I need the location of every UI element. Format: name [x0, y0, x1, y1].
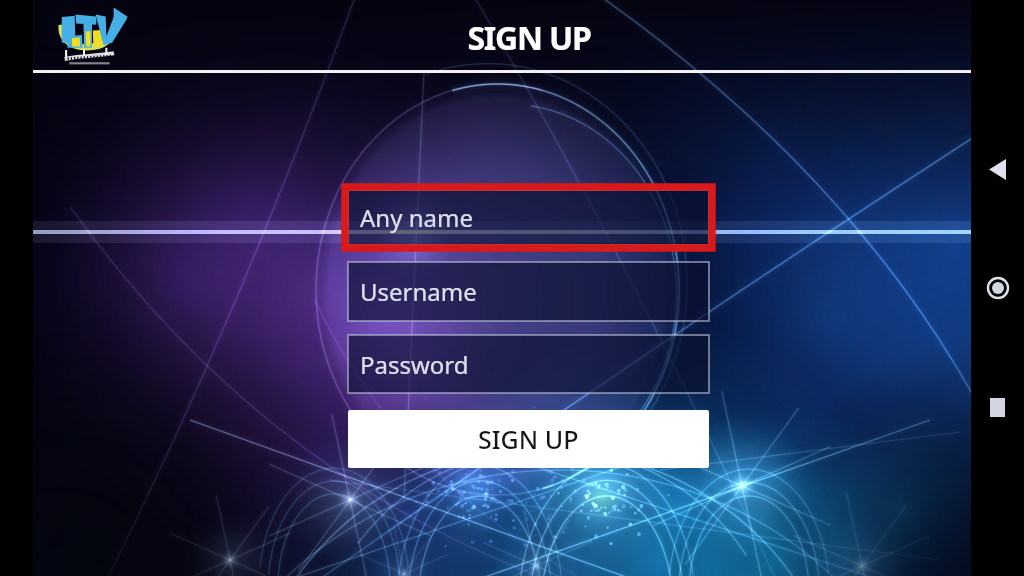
button[interactable]: Password [348, 335, 709, 393]
button[interactable]: Recent apps [971, 386, 1024, 428]
button[interactable]: Back [971, 148, 1024, 190]
button[interactable]: Username [348, 262, 709, 321]
staticText: Password [360, 348, 469, 381]
button[interactable]: Home [971, 267, 1024, 309]
button[interactable]: SIGN UP [348, 410, 709, 468]
button[interactable]: Any name [348, 190, 709, 245]
staticText: Any name [360, 201, 473, 234]
staticText: Username [360, 275, 477, 308]
staticText: SIGN UP [478, 422, 579, 456]
staticText: SIGN UP [467, 16, 591, 60]
